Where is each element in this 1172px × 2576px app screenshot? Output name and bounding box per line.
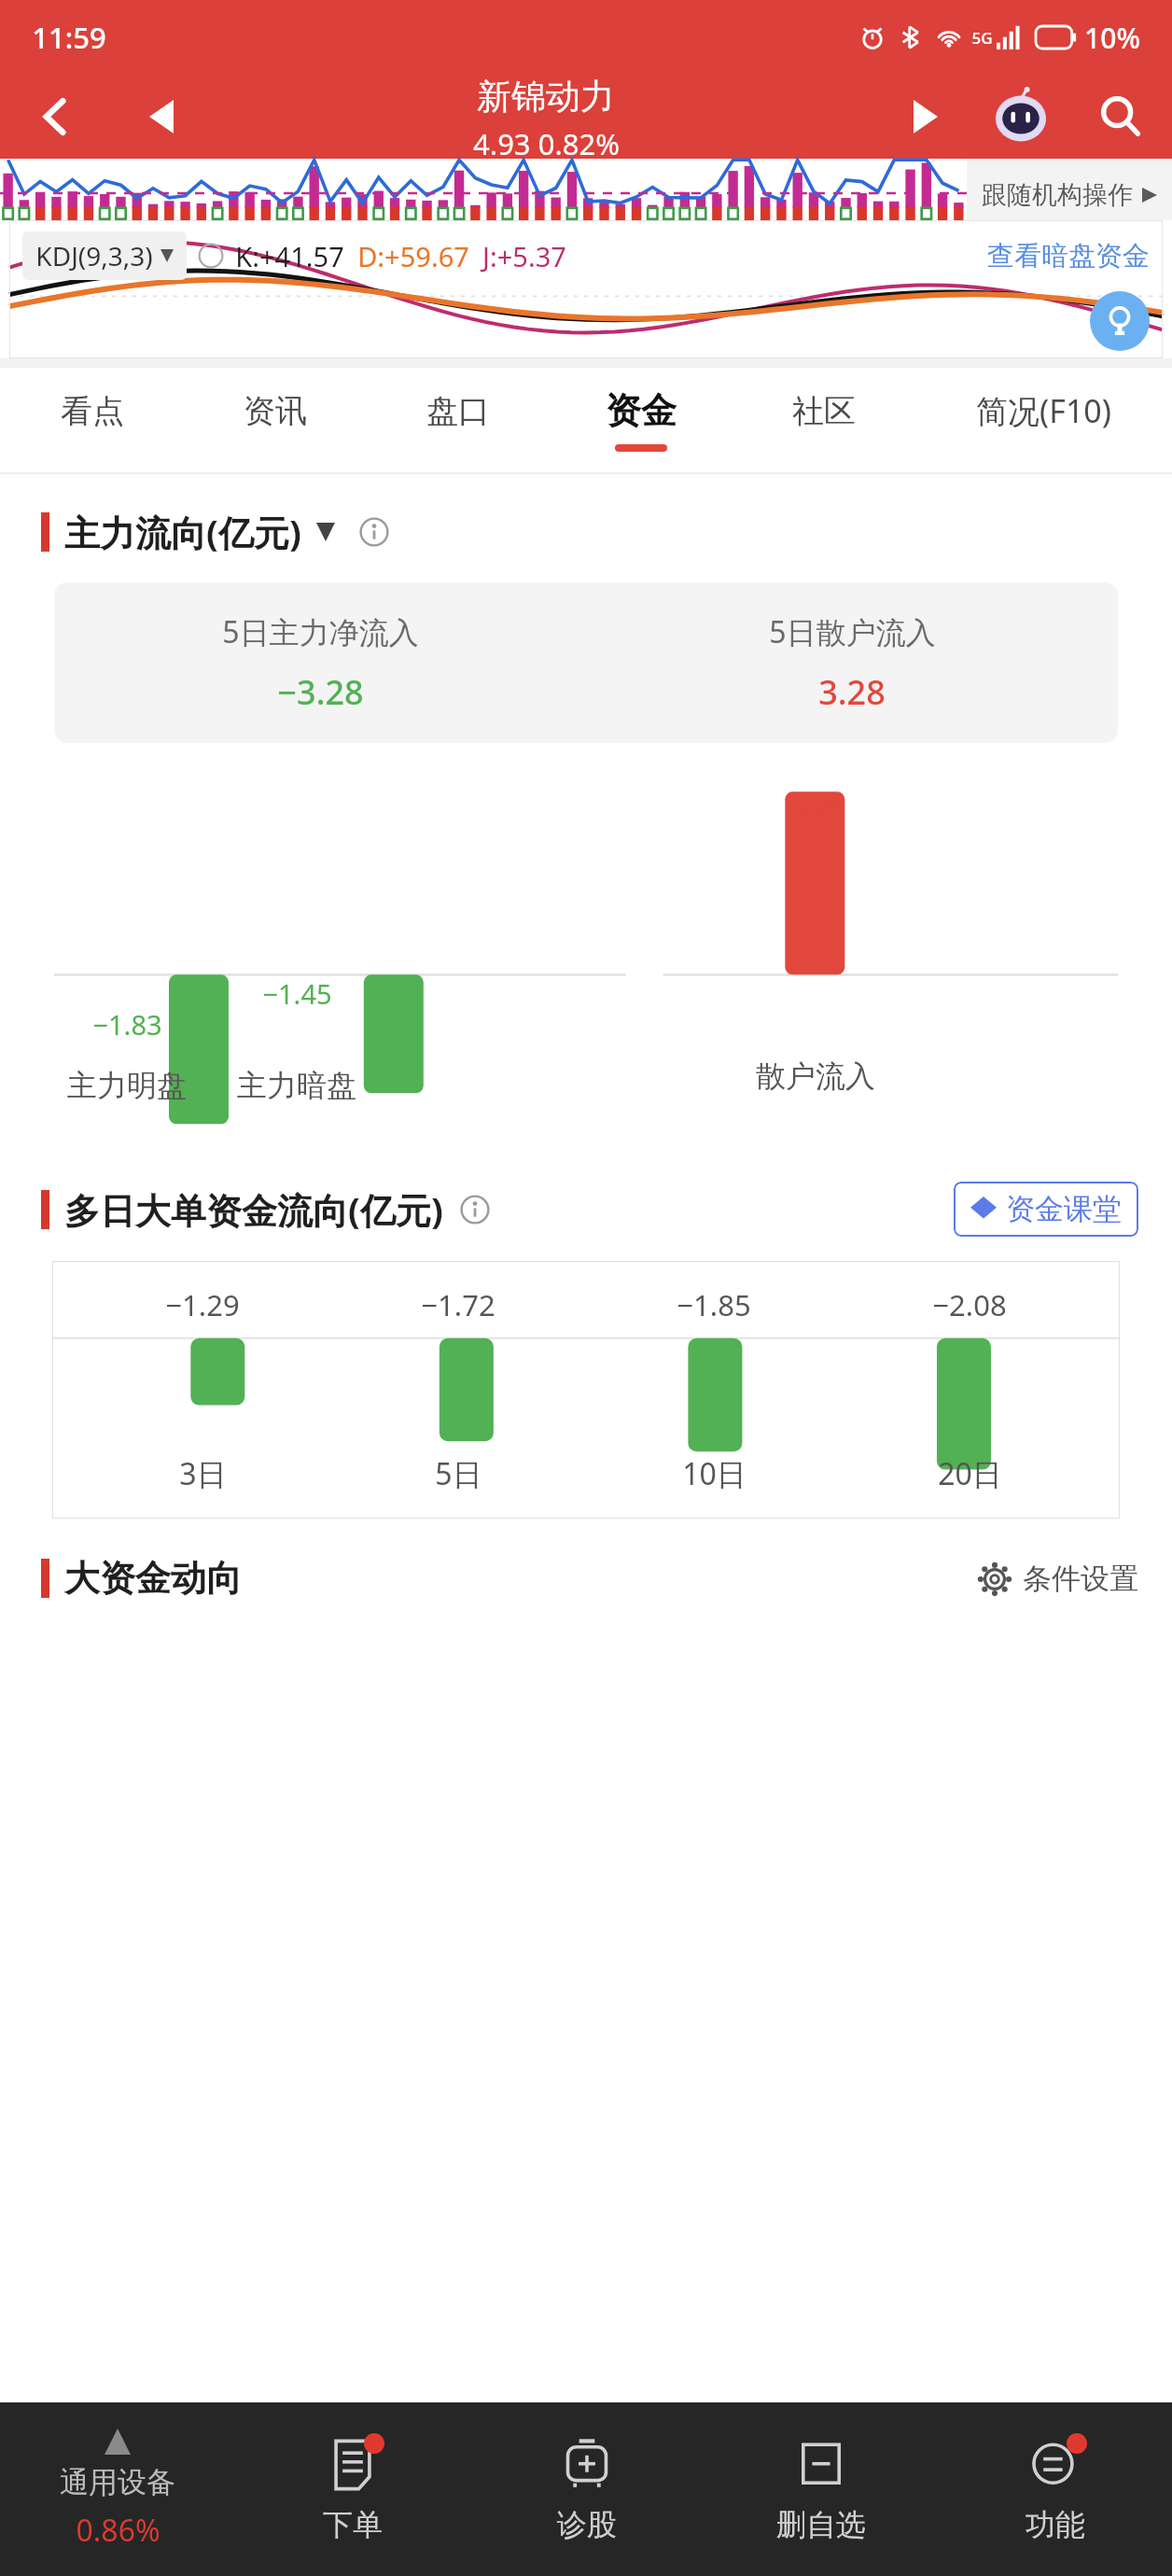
staticText: 5日散户流入 <box>769 611 936 652</box>
staticText: 多日大单资金流向(亿元) <box>64 1185 443 1234</box>
staticText: 资金课堂 <box>1006 1191 1122 1227</box>
button[interactable]: Info <box>359 517 389 547</box>
button[interactable]: 删自选 <box>704 2402 938 2576</box>
button[interactable]: Tips <box>1090 291 1150 351</box>
button[interactable]: 盘口 <box>367 368 550 472</box>
staticText: 主力暗盘 <box>237 1067 356 1104</box>
button[interactable]: 看点 <box>0 368 184 472</box>
staticText: 新锦动力 <box>477 75 615 119</box>
staticText: 盘口 <box>426 391 490 431</box>
staticText: 主力流向(亿元) <box>64 508 301 556</box>
button[interactable]: 下单 <box>235 2402 469 2576</box>
staticText: KDJ(9,3,3) <box>35 238 153 273</box>
button[interactable]: Info <box>460 1195 490 1225</box>
staticText: 简况(F10) <box>976 389 1111 432</box>
staticText: 功能 <box>1025 2506 1085 2543</box>
staticText: −1.83 <box>92 1006 162 1043</box>
staticText: 3日 <box>179 1453 227 1494</box>
button[interactable]: 诊股 <box>469 2402 704 2576</box>
button[interactable]: 5日主力净流入 <box>54 582 1118 743</box>
button[interactable]: Previous stock <box>110 75 213 159</box>
staticText: 诊股 <box>557 2506 617 2543</box>
staticText: 3.28 <box>788 790 843 826</box>
button[interactable]: AI assistant <box>972 75 1069 159</box>
staticText: 社区 <box>792 391 856 431</box>
button[interactable]: 社区 <box>732 368 915 472</box>
staticText: 看点 <box>61 391 124 431</box>
staticText: −3.28 <box>277 669 364 715</box>
staticText: 下单 <box>323 2506 383 2543</box>
staticText: J:+5.37 <box>482 238 566 274</box>
staticText: 5日 <box>435 1453 482 1494</box>
staticText: 3.28 <box>818 669 886 715</box>
staticText: K:+41.57 <box>235 238 344 274</box>
button[interactable]: 资讯 <box>184 368 367 472</box>
button[interactable]: Search <box>1069 75 1172 159</box>
staticText: 10% <box>1084 19 1140 57</box>
button[interactable]: 跟随机构操作 <box>967 159 1172 220</box>
staticText: 10日 <box>682 1453 746 1494</box>
button[interactable]: 通用设备 <box>0 2402 235 2576</box>
button[interactable]: 条件设置 <box>978 1561 1138 1597</box>
staticText: 11:59 <box>32 18 106 57</box>
staticText: 删自选 <box>776 2506 866 2543</box>
button[interactable]: 资金 <box>550 368 732 472</box>
button[interactable]: Next stock <box>879 75 972 159</box>
staticText: 5日主力净流入 <box>222 611 419 652</box>
staticText: 0.86% <box>76 2510 160 2551</box>
staticText: 条件设置 <box>1023 1561 1138 1597</box>
staticText: 跟随机构操作 <box>982 179 1133 211</box>
staticText: 20日 <box>938 1453 1002 1494</box>
staticText: −1.85 <box>677 1285 751 1324</box>
staticText: 查看暗盘资金 <box>987 239 1150 273</box>
button[interactable]: 资金课堂 <box>954 1182 1138 1237</box>
staticText: −1.29 <box>165 1285 240 1324</box>
staticText: 4.93 0.82% <box>473 124 620 159</box>
staticText: 主力明盘 <box>67 1067 187 1104</box>
button[interactable]: 简况(F10) <box>915 368 1172 472</box>
staticText: 通用设备 <box>60 2464 175 2500</box>
staticText: 大资金动向 <box>64 1556 242 1601</box>
button[interactable]: Back <box>0 75 110 159</box>
button[interactable]: KDJ(9,3,3) <box>22 231 187 280</box>
staticText: 5G <box>971 27 993 49</box>
staticText: 资讯 <box>244 391 307 431</box>
staticText: −2.08 <box>932 1285 1007 1324</box>
button[interactable] <box>316 523 335 541</box>
staticText: −1.45 <box>262 975 332 1012</box>
staticText: −1.72 <box>421 1285 495 1324</box>
staticText: D:+59.67 <box>357 238 469 274</box>
staticText: 散户流入 <box>756 1057 875 1095</box>
staticText: 资金 <box>606 388 677 433</box>
button[interactable]: 功能 <box>938 2402 1172 2576</box>
